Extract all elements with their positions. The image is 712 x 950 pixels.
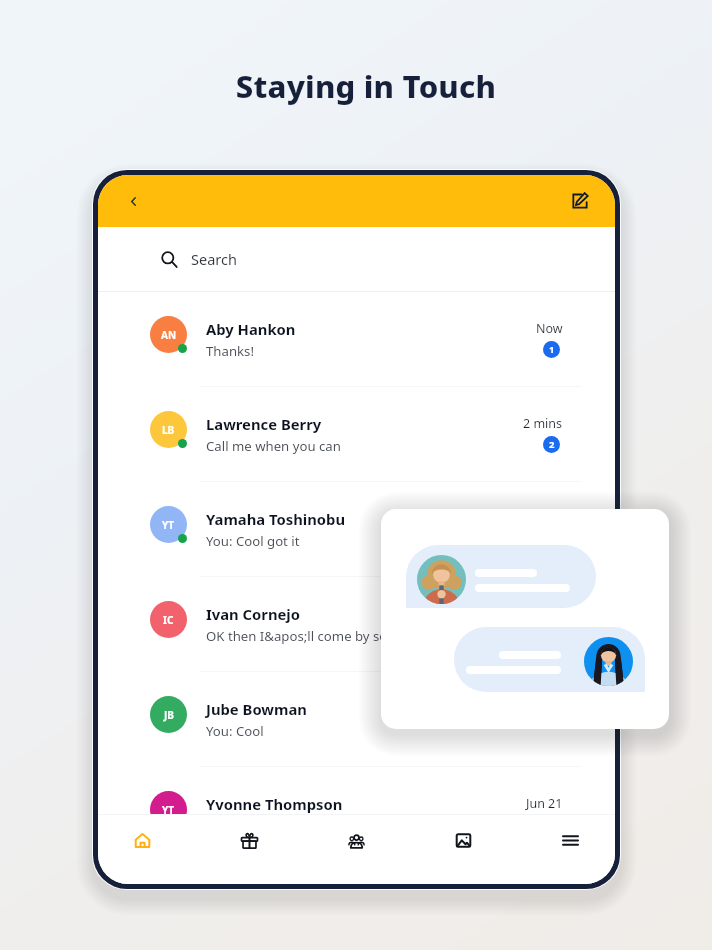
staticText: 2	[549, 438, 555, 451]
staticText: LB	[162, 423, 175, 437]
button[interactable]: Gifts	[227, 818, 271, 862]
button[interactable]: Search	[98, 227, 615, 291]
button[interactable]: JB	[98, 667, 615, 762]
staticText: Aby Hankon	[206, 319, 296, 339]
staticText: Ivan Cornejo	[206, 604, 301, 624]
button[interactable]: Conversation preview	[381, 509, 669, 729]
staticText: Lawrence Berry	[206, 414, 322, 434]
button[interactable]: LB	[98, 382, 615, 477]
staticText: 2 mins	[523, 415, 563, 432]
staticText: AN	[161, 328, 177, 342]
staticText: Jube Bowman	[206, 699, 307, 719]
button[interactable]: YT	[98, 477, 615, 572]
button[interactable]: Contacts	[334, 818, 378, 862]
staticText: OK then I&apos;ll come by som	[206, 627, 400, 645]
button[interactable]: Compose message	[563, 184, 597, 218]
staticText: Staying in Touch	[10, 65, 712, 107]
staticText: You: Cool	[206, 722, 264, 740]
staticText: JB	[164, 708, 174, 722]
button[interactable]: IC	[98, 572, 615, 667]
staticText: You: Cool got it	[206, 532, 300, 550]
button[interactable]: YT	[98, 762, 615, 814]
button[interactable]: Back	[116, 184, 150, 218]
staticText: 1	[549, 343, 555, 356]
staticText: Yamaha Toshinobu	[206, 509, 346, 529]
staticText: Yvonne Thompson	[206, 794, 343, 814]
staticText: YT	[162, 803, 175, 814]
button[interactable]: Menu	[548, 818, 592, 862]
button[interactable]: AN	[98, 292, 615, 382]
staticText: Search	[191, 249, 237, 269]
staticText: Call me when you can	[206, 437, 341, 455]
staticText: Thanks!	[206, 342, 254, 360]
staticText: Jun 21	[526, 795, 563, 812]
staticText: Now	[536, 320, 563, 337]
staticText: YT	[162, 518, 175, 532]
button[interactable]: Home	[120, 818, 164, 862]
button[interactable]: Photos	[441, 818, 485, 862]
staticText: IC	[163, 613, 174, 627]
